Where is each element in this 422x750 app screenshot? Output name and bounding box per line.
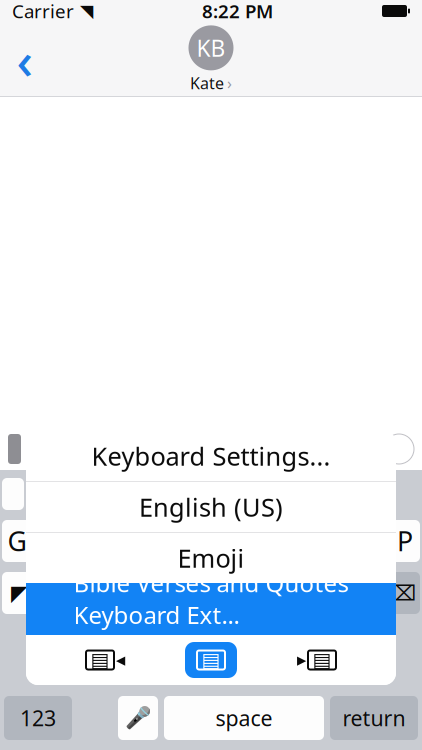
button[interactable]: Bible Verses and Quotes Keyboard Ext... (26, 583, 396, 635)
staticText: ⌫ (386, 581, 416, 605)
staticText: G (7, 523, 26, 559)
staticText: Keyboard Settings... (91, 439, 330, 473)
staticText: ‹ (16, 26, 33, 93)
staticText: P (397, 523, 413, 559)
button[interactable]: Back (4, 34, 46, 84)
staticText: 123 (20, 704, 56, 732)
staticText: Kate (190, 72, 224, 94)
button[interactable]: KB (188, 25, 233, 94)
staticText: space (215, 704, 272, 732)
staticText: ◀ (116, 653, 125, 667)
staticText: English (186, 632, 236, 651)
button[interactable]: Move keyboard right (290, 642, 342, 678)
staticText: › (227, 72, 232, 94)
button[interactable]: Dictate (118, 696, 158, 740)
button[interactable]: Keyboard Settings... (26, 431, 396, 481)
staticText: Carrier (12, 0, 74, 23)
button[interactable]: English (US) (26, 482, 396, 532)
staticText: ◤ (11, 581, 27, 605)
staticText: KB (196, 33, 225, 63)
staticText: ▶ (297, 653, 306, 667)
staticText: ▤ (90, 649, 109, 671)
button[interactable]: Emoji (26, 533, 396, 583)
staticText: ▤ (312, 649, 331, 671)
button[interactable]: Dock keyboard (185, 642, 237, 678)
staticText: ◥ (80, 1, 93, 21)
button[interactable]: 123 (4, 696, 72, 740)
staticText: ▤ (201, 649, 220, 671)
staticText: 🎤 (124, 706, 151, 730)
staticText: 8:22 PM (202, 0, 273, 23)
staticText: English (US) (139, 490, 283, 524)
staticText: Emoji (177, 541, 244, 575)
button[interactable]: Move keyboard left (79, 642, 131, 678)
button[interactable]: return (330, 696, 418, 740)
staticText: Bible Verses and Quotes Keyboard Ext... (73, 567, 348, 631)
button[interactable]: space (164, 696, 324, 740)
staticText: return (342, 704, 405, 732)
